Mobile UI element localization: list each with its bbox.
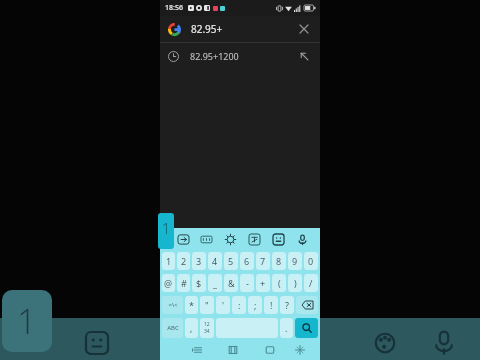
button[interactable]: 5 xyxy=(224,252,238,270)
button[interactable]: , xyxy=(185,318,198,338)
staticText: _ xyxy=(213,277,217,289)
staticText: . xyxy=(285,322,288,334)
button[interactable]: Settings xyxy=(218,228,242,250)
staticText: @ xyxy=(164,277,173,289)
button[interactable]: : xyxy=(232,296,246,314)
button[interactable]: Backspace xyxy=(296,296,318,314)
button[interactable]: Clipboard xyxy=(172,228,195,250)
staticText: + xyxy=(260,277,266,289)
staticText: ' xyxy=(222,299,225,311)
button[interactable]: 82.95+1200 xyxy=(160,43,320,69)
button[interactable]: - xyxy=(240,274,254,292)
staticText: * xyxy=(189,299,194,311)
staticText: 8 xyxy=(276,255,282,267)
staticText: 1 xyxy=(162,219,170,238)
button[interactable]: ? xyxy=(280,296,294,314)
button[interactable]: $ xyxy=(192,274,206,292)
button[interactable]: & xyxy=(224,274,238,292)
button[interactable]: Stickers xyxy=(80,326,114,360)
staticText: # xyxy=(181,277,187,289)
button[interactable]: " xyxy=(200,296,214,314)
staticText: 82.95+1200 xyxy=(190,50,239,62)
staticText: 0 xyxy=(308,255,314,267)
staticText: ) xyxy=(294,277,297,289)
button[interactable]: . xyxy=(280,318,293,338)
staticText: 82.95+ xyxy=(191,22,223,36)
button[interactable]: 1 xyxy=(162,252,175,270)
button[interactable]: Insert suggestion xyxy=(296,48,312,64)
button[interactable]: + xyxy=(256,274,270,292)
staticText: ! xyxy=(270,299,273,311)
button[interactable]: Assistant xyxy=(288,340,311,360)
staticText: ( xyxy=(278,277,281,289)
staticText: 1 xyxy=(17,298,37,344)
button[interactable]: Themes xyxy=(368,326,402,360)
staticText: 6 xyxy=(244,255,250,267)
button[interactable]: Clear xyxy=(296,21,312,37)
button[interactable]: ) xyxy=(288,274,302,292)
staticText: 3 xyxy=(196,255,202,267)
staticText: , xyxy=(190,322,193,334)
button[interactable]: * xyxy=(185,296,198,314)
button[interactable]: 82.95+ xyxy=(160,16,320,42)
button[interactable]: =\< xyxy=(162,296,183,314)
staticText: ; xyxy=(254,299,257,311)
button[interactable]: 7 xyxy=(256,252,270,270)
button[interactable]: Translate xyxy=(242,228,266,250)
button[interactable]: Recents xyxy=(258,340,281,360)
button[interactable]: Voice input xyxy=(290,228,314,250)
staticText: 7 xyxy=(260,255,266,267)
button[interactable]: ( xyxy=(272,274,286,292)
staticText: ? xyxy=(285,299,289,311)
button[interactable]: 3 xyxy=(192,252,206,270)
staticText: : xyxy=(238,299,241,311)
staticText: / xyxy=(309,277,313,289)
staticText: 34 xyxy=(204,328,210,335)
button[interactable]: 4 xyxy=(208,252,222,270)
button[interactable]: 6 xyxy=(240,252,254,270)
staticText: 2 xyxy=(181,255,187,267)
button[interactable]: 8 xyxy=(272,252,286,270)
staticText: 5 xyxy=(228,255,234,267)
staticText: " xyxy=(205,299,209,311)
button[interactable]: Voice input xyxy=(424,322,464,360)
button[interactable]: 2 xyxy=(177,252,190,270)
button[interactable]: ABC xyxy=(162,318,183,338)
staticText: 9 xyxy=(292,255,298,267)
staticText: & xyxy=(228,277,235,289)
staticText: 18:56 xyxy=(165,3,183,13)
button[interactable]: _ xyxy=(208,274,222,292)
button[interactable]: ! xyxy=(264,296,278,314)
staticText: 1 xyxy=(166,255,172,267)
button[interactable]: Space xyxy=(216,318,278,338)
button[interactable]: @ xyxy=(162,274,175,292)
button[interactable]: Back xyxy=(186,340,208,360)
button[interactable]: 0 xyxy=(304,252,318,270)
staticText: ABC xyxy=(167,324,179,332)
button[interactable]: GIF xyxy=(195,228,218,250)
staticText: 12 xyxy=(204,321,210,328)
button[interactable]: 12 xyxy=(200,318,214,338)
staticText: - xyxy=(246,277,249,289)
button[interactable]: Home xyxy=(221,340,244,360)
staticText: $ xyxy=(196,277,202,289)
button[interactable]: Stickers xyxy=(266,228,290,250)
button[interactable]: ; xyxy=(248,296,262,314)
button[interactable]: 9 xyxy=(288,252,302,270)
button[interactable]: Search xyxy=(295,318,318,338)
staticText: =\< xyxy=(168,301,178,309)
button[interactable]: / xyxy=(304,274,318,292)
button[interactable]: # xyxy=(177,274,190,292)
button[interactable]: ' xyxy=(216,296,230,314)
staticText: 4 xyxy=(212,255,218,267)
